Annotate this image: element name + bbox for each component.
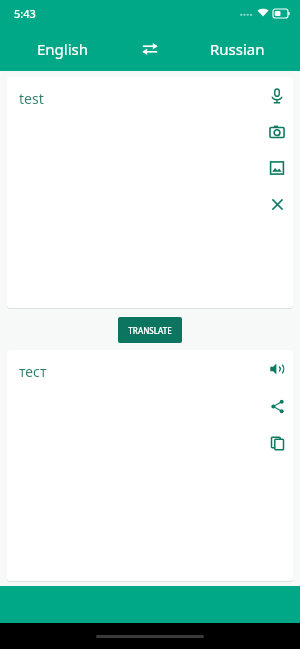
staticText: test [19,89,44,108]
button[interactable]: Russian [174,39,300,59]
button[interactable]: Image input [264,155,290,181]
button[interactable]: Copy [264,430,290,456]
button[interactable]: Swap languages [126,26,174,71]
button[interactable]: Voice input [264,83,290,109]
button[interactable]: Share [264,393,290,419]
button[interactable]: English [0,39,126,59]
button[interactable]: TRANSLATE [118,317,182,343]
staticText: 5:43 [14,6,36,21]
button[interactable]: Listen [264,356,290,382]
staticText: TRANSLATE [128,325,172,336]
staticText: English [37,39,89,59]
staticText: тест [19,362,47,381]
button[interactable]: Clear text [264,191,290,217]
button[interactable]: Camera input [264,119,290,145]
staticText: Russian [210,39,265,59]
